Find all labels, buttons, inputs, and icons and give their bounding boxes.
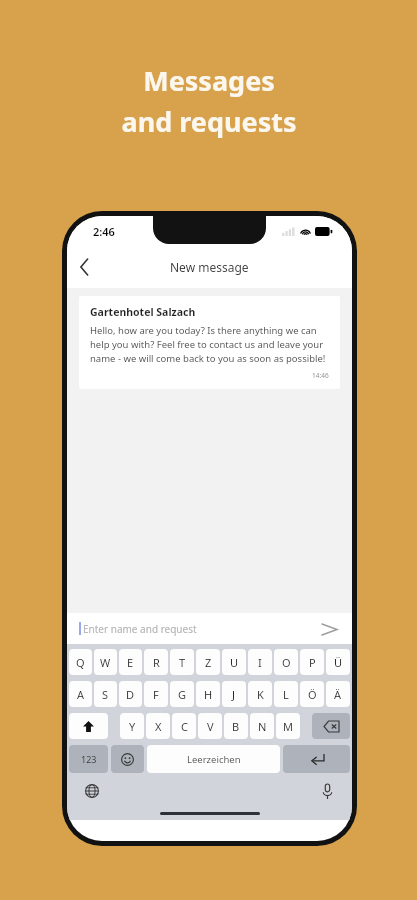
staticText: New message xyxy=(170,259,249,275)
button[interactable]: J xyxy=(222,681,246,707)
staticText: K xyxy=(257,687,264,702)
button[interactable]: T xyxy=(170,649,194,675)
button[interactable]: L xyxy=(274,681,298,707)
button[interactable]: Ä xyxy=(326,681,350,707)
staticText: M xyxy=(283,719,293,734)
staticText: T xyxy=(179,655,186,670)
button[interactable]: X xyxy=(146,713,170,739)
staticText: N xyxy=(258,719,267,734)
staticText: G xyxy=(178,687,187,702)
button[interactable]: Leerzeichen xyxy=(147,745,280,773)
staticText: Y xyxy=(129,719,136,734)
button[interactable]: N xyxy=(250,713,274,739)
button[interactable]: Ü xyxy=(326,649,350,675)
button[interactable]: W xyxy=(94,649,117,675)
staticText: B xyxy=(232,719,240,734)
button[interactable]: C xyxy=(172,713,196,739)
button[interactable]: M xyxy=(276,713,300,739)
staticText: E xyxy=(127,655,134,670)
staticText: L xyxy=(283,687,289,702)
button[interactable]: O xyxy=(274,649,298,675)
staticText: X xyxy=(155,719,162,734)
button[interactable]: Return xyxy=(283,745,350,773)
button[interactable]: Shift xyxy=(69,713,108,739)
button[interactable]: H xyxy=(196,681,220,707)
staticText: F xyxy=(153,687,159,702)
button[interactable]: Z xyxy=(196,649,220,675)
staticText: 123 xyxy=(81,753,97,765)
staticText: 14:46 xyxy=(312,371,329,380)
staticText: Ü xyxy=(334,655,343,670)
staticText: Leerzeichen xyxy=(187,753,241,766)
button[interactable]: U xyxy=(222,649,246,675)
button[interactable]: Backspace xyxy=(312,713,350,739)
button[interactable]: Enter name and request xyxy=(67,613,352,644)
staticText: O xyxy=(282,655,291,670)
button[interactable]: S xyxy=(94,681,117,707)
staticText: Hello, how are you today? Is there anyth… xyxy=(90,324,329,365)
staticText: H xyxy=(204,687,213,702)
button[interactable]: V xyxy=(198,713,222,739)
button[interactable]: Voice input xyxy=(316,780,338,802)
button[interactable]: D xyxy=(119,681,142,707)
button[interactable]: Back xyxy=(67,250,101,284)
button[interactable]: Change keyboard language xyxy=(81,780,103,802)
staticText: Gartenhotel Salzach xyxy=(90,305,196,319)
staticText: P xyxy=(309,655,316,670)
staticText: and requests xyxy=(121,103,297,140)
staticText: 2:46 xyxy=(93,224,115,239)
staticText: W xyxy=(100,655,111,670)
staticText: Messages xyxy=(143,62,275,99)
staticText: C xyxy=(181,719,188,734)
staticText: Q xyxy=(76,655,85,670)
staticText: Ö xyxy=(308,687,317,702)
button[interactable]: Q xyxy=(69,649,92,675)
staticText: Enter name and request xyxy=(83,622,197,636)
button[interactable]: Y xyxy=(120,713,144,739)
staticText: V xyxy=(207,719,214,734)
button[interactable]: R xyxy=(144,649,168,675)
button[interactable]: G xyxy=(170,681,194,707)
staticText: S xyxy=(102,687,109,702)
staticText: D xyxy=(126,687,135,702)
button[interactable]: I xyxy=(248,649,272,675)
staticText: Ä xyxy=(334,687,342,702)
button[interactable]: K xyxy=(248,681,272,707)
staticText: Z xyxy=(205,655,212,670)
button[interactable]: A xyxy=(69,681,92,707)
button[interactable]: F xyxy=(144,681,168,707)
button[interactable]: 123 xyxy=(69,745,108,773)
button[interactable]: Ö xyxy=(300,681,324,707)
staticText: U xyxy=(230,655,239,670)
staticText: A xyxy=(77,687,85,702)
button[interactable]: Send xyxy=(318,618,340,640)
staticText: R xyxy=(153,655,160,670)
button[interactable]: E xyxy=(119,649,142,675)
button[interactable]: B xyxy=(224,713,248,739)
staticText: J xyxy=(232,687,236,702)
button[interactable]: P xyxy=(300,649,324,675)
button[interactable]: Emoji xyxy=(111,745,144,773)
staticText: I xyxy=(258,655,262,670)
button[interactable]: Gartenhotel Salzach xyxy=(79,296,340,389)
